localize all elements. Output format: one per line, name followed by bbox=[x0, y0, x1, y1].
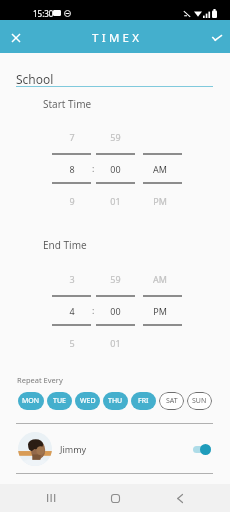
button[interactable]: Close bbox=[4, 26, 28, 50]
button[interactable]: Enabled bbox=[193, 443, 211, 455]
button[interactable]: Home bbox=[102, 485, 128, 511]
staticText: FRI bbox=[138, 396, 149, 406]
staticText: : bbox=[92, 162, 95, 174]
staticText: 5 bbox=[69, 337, 75, 349]
button[interactable]: AM bbox=[143, 120, 182, 217]
staticText: SAT bbox=[166, 396, 178, 406]
staticText: 01 bbox=[110, 195, 121, 207]
button[interactable]: 59 bbox=[96, 262, 135, 359]
staticText: MON bbox=[22, 396, 40, 406]
staticText: TIMEX bbox=[92, 30, 143, 46]
button[interactable]: THU bbox=[103, 392, 128, 410]
button[interactable]: SUN bbox=[187, 392, 212, 410]
staticText: 15:30 bbox=[33, 8, 54, 19]
button[interactable]: 59 bbox=[96, 120, 135, 217]
staticText: 00 bbox=[110, 305, 121, 317]
staticText: 9 bbox=[69, 195, 75, 207]
staticText: THU bbox=[108, 396, 123, 406]
staticText: School bbox=[16, 71, 54, 87]
staticText: SUN bbox=[192, 396, 207, 406]
staticText: Repeat Every bbox=[17, 375, 63, 385]
staticText: : bbox=[92, 304, 95, 316]
button[interactable]: Save bbox=[205, 26, 229, 50]
staticText: 01 bbox=[110, 337, 121, 349]
button[interactable]: Back bbox=[167, 485, 193, 511]
button[interactable]: Recents bbox=[38, 485, 64, 511]
staticText: PM bbox=[153, 305, 167, 317]
staticText: 59 bbox=[110, 273, 121, 285]
staticText: 7 bbox=[69, 131, 75, 143]
staticText: AM bbox=[153, 273, 167, 285]
staticText: End Time bbox=[43, 238, 87, 252]
staticText: Start Time bbox=[43, 97, 92, 111]
button[interactable]: FRI bbox=[131, 392, 156, 410]
staticText: WED bbox=[80, 396, 96, 406]
button[interactable]: Jimmy bbox=[0, 424, 230, 473]
staticText: 4 bbox=[69, 305, 75, 317]
staticText: PM bbox=[153, 195, 167, 207]
staticText: AM bbox=[153, 163, 167, 175]
button[interactable]: MON bbox=[18, 392, 44, 410]
button[interactable]: SAT bbox=[159, 392, 184, 410]
staticText: 00 bbox=[110, 163, 121, 175]
button[interactable]: WED bbox=[75, 392, 100, 410]
staticText: 3 bbox=[69, 273, 75, 285]
button[interactable]: TUE bbox=[47, 392, 72, 410]
staticText: 59 bbox=[110, 131, 121, 143]
button[interactable]: 7 bbox=[52, 120, 91, 217]
staticText: TUE bbox=[53, 396, 66, 406]
button[interactable]: AM bbox=[143, 262, 182, 359]
button[interactable]: 3 bbox=[52, 262, 91, 359]
staticText: Jimmy bbox=[60, 443, 87, 455]
staticText: 8 bbox=[69, 163, 75, 175]
